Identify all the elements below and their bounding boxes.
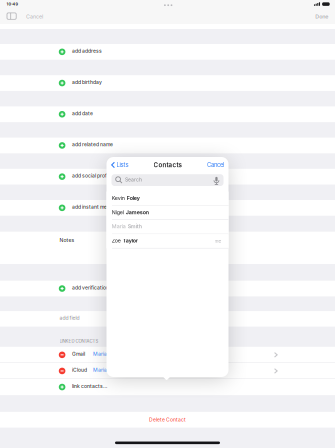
button[interactable]: add verification xyxy=(0,281,335,296)
staticText: Done xyxy=(315,13,328,20)
staticText: add address xyxy=(72,48,102,54)
staticText: Nigel xyxy=(112,209,126,215)
staticText: Zoe xyxy=(112,237,123,244)
button[interactable]: Maria xyxy=(106,220,228,234)
button[interactable]: add social profile xyxy=(0,169,335,184)
staticText: add verification xyxy=(72,285,109,291)
staticText: me xyxy=(214,238,221,244)
button[interactable]: add birthday xyxy=(0,75,335,91)
staticText: add related name xyxy=(72,141,113,147)
button[interactable]: Done xyxy=(315,13,328,20)
staticText: Taylor xyxy=(123,237,138,244)
staticText: Cancel xyxy=(26,13,43,20)
staticText: add date xyxy=(72,110,93,116)
staticText: 10:49 xyxy=(6,2,18,6)
button[interactable]: Kevin xyxy=(106,192,228,206)
staticText: Maria Smith xyxy=(93,351,121,357)
staticText: Gmail xyxy=(72,351,85,357)
button[interactable]: Cancel xyxy=(106,161,224,168)
staticText: add field xyxy=(59,315,79,321)
button[interactable]: add address xyxy=(0,44,335,60)
button[interactable]: iCloud xyxy=(0,363,335,379)
staticText: Cancel xyxy=(207,161,224,168)
button[interactable]: Lists xyxy=(111,161,129,168)
staticText: LINKED CONTACTS xyxy=(59,338,98,344)
button[interactable]: add instant message xyxy=(0,200,335,216)
staticText: link contacts… xyxy=(72,383,107,389)
staticText: Foley xyxy=(127,195,140,201)
staticText: Maria Smith xyxy=(93,367,121,373)
staticText: add instant message xyxy=(72,204,122,210)
staticText: Smith xyxy=(128,223,142,230)
button[interactable]: Show sidebar xyxy=(7,13,16,19)
button[interactable]: Nigel xyxy=(106,206,228,220)
staticText: Contacts xyxy=(153,161,181,169)
button[interactable]: add date xyxy=(0,106,335,122)
staticText: add birthday xyxy=(72,79,102,85)
button[interactable]: Delete Contact xyxy=(0,412,335,428)
staticText: add social profile xyxy=(72,173,112,179)
staticText: Delete Contact xyxy=(149,417,186,423)
button[interactable]: Gmail xyxy=(0,347,335,363)
staticText: Search xyxy=(125,176,142,183)
button[interactable]: Zoe xyxy=(106,234,228,248)
staticText: Notes xyxy=(59,237,74,243)
staticText: Maria xyxy=(112,223,128,230)
button[interactable]: add related name xyxy=(0,138,335,153)
staticText: Lists xyxy=(117,161,129,168)
button[interactable]: add field xyxy=(0,311,335,327)
button[interactable]: link contacts… xyxy=(0,379,335,395)
staticText: Jameson xyxy=(126,209,149,215)
staticText: iCloud xyxy=(72,367,87,373)
staticText: Kevin xyxy=(112,195,127,201)
button[interactable]: Cancel xyxy=(26,13,43,20)
